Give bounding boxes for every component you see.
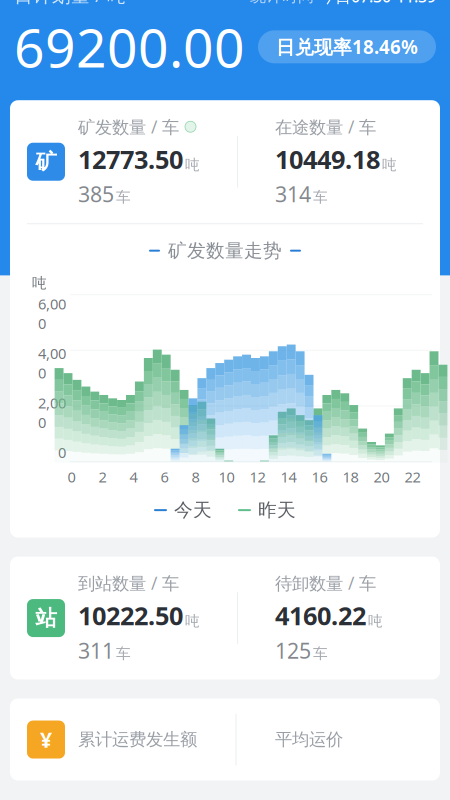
staticText: 0: [58, 443, 66, 462]
staticText: 12773.50: [78, 142, 183, 176]
staticText: 10: [218, 467, 234, 487]
staticText: 125: [275, 636, 311, 664]
staticText: 待卸数量 / 车: [275, 572, 376, 595]
staticText: 车: [116, 644, 131, 662]
staticText: ¥: [40, 725, 52, 754]
staticText: 4: [129, 467, 137, 487]
staticText: 日兑现率18.46%: [276, 34, 418, 59]
staticText: 311: [78, 636, 114, 664]
staticText: 昨天: [258, 499, 296, 521]
staticText: 314: [275, 180, 311, 208]
staticText: 20: [373, 467, 389, 487]
button[interactable]: 日兑现率18.46%: [258, 30, 436, 63]
staticText: 吨: [368, 612, 383, 630]
staticText: 到站数量 / 车: [78, 572, 179, 595]
staticText: 车: [116, 188, 131, 206]
staticText: 吨: [185, 612, 200, 630]
staticText: 累计运费发生额: [78, 729, 197, 750]
staticText: 矿发数量走势: [168, 239, 282, 262]
staticText: 矿: [35, 149, 56, 175]
staticText: 18: [342, 467, 358, 487]
staticText: 站: [35, 605, 56, 631]
staticText: 车: [313, 644, 328, 662]
staticText: 8: [191, 467, 199, 487]
staticText: 统计时间: [250, 0, 314, 6]
staticText: 在途数量 / 车: [275, 115, 376, 138]
staticText: 69200.00: [14, 11, 245, 82]
staticText: 日计划量 / 吨: [14, 0, 126, 7]
staticText: 2,000: [38, 393, 66, 432]
staticText: 吨: [382, 156, 397, 174]
staticText: 14: [280, 467, 296, 487]
staticText: 吨: [185, 156, 200, 174]
staticText: 6: [160, 467, 168, 487]
staticText: 车: [313, 188, 328, 206]
staticText: 10449.18: [275, 142, 380, 176]
staticText: 6,000: [38, 294, 66, 333]
staticText: 4,000: [38, 344, 66, 383]
staticText: 矿发数量 / 车: [78, 115, 179, 138]
staticText: 平均运价: [275, 729, 343, 750]
staticText: 2: [98, 467, 106, 487]
staticText: 385: [78, 180, 114, 208]
staticText: 22: [404, 467, 420, 487]
staticText: 吨: [32, 274, 47, 292]
staticText: 0: [67, 467, 75, 487]
staticText: 今日07:30-11:39: [319, 0, 436, 7]
staticText: 12: [249, 467, 265, 487]
staticText: 10222.50: [78, 599, 183, 632]
staticText: 16: [311, 467, 327, 487]
staticText: 4160.22: [275, 599, 366, 632]
staticText: 今天: [174, 499, 212, 521]
